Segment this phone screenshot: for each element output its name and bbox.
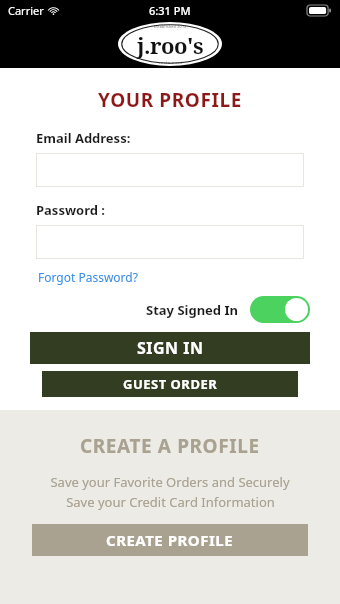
staticText: Email Address:: [36, 129, 131, 147]
staticText: Password :: [36, 201, 105, 219]
staticText: GUEST ORDER: [123, 375, 218, 393]
staticText: Save your Credit Card Information: [66, 493, 275, 511]
staticText: CREATE PROFILE: [106, 530, 234, 550]
staticText: Forgot Password?: [38, 269, 138, 285]
other: Wi-Fi: [48, 6, 59, 15]
button[interactable]: [36, 153, 304, 187]
button[interactable]: GUEST ORDER: [42, 371, 298, 397]
staticText: Established 2012: [154, 24, 187, 29]
staticText: j.roo's: [137, 30, 204, 60]
button[interactable]: CREATE PROFILE: [32, 524, 308, 556]
staticText: Carrier: [8, 3, 44, 18]
staticText: Stay Signed In: [146, 301, 238, 319]
other: Battery: [307, 5, 331, 16]
staticText: restaurant: [159, 60, 183, 65]
staticText: YOUR PROFILE: [0, 87, 340, 113]
staticText: SIGN IN: [137, 337, 204, 359]
staticText: Save your Favorite Orders and Securely: [50, 473, 290, 491]
staticText: 6:31 PM: [149, 3, 191, 18]
staticText: CREATE A PROFILE: [80, 433, 260, 459]
button[interactable]: Forgot Password?: [36, 267, 140, 287]
button[interactable]: Stay Signed In toggle: [250, 296, 310, 323]
button[interactable]: [36, 225, 304, 259]
button[interactable]: SIGN IN: [30, 332, 310, 364]
